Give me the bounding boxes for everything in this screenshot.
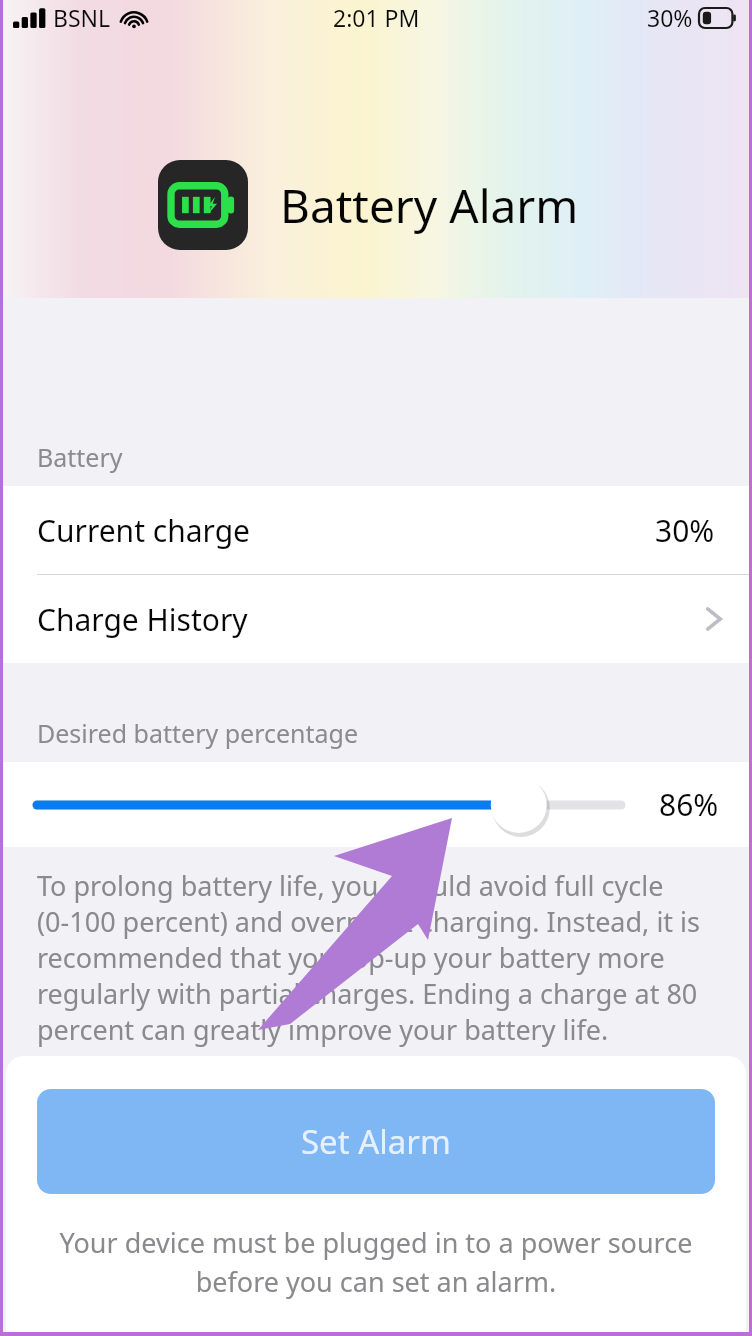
staticText: 30% bbox=[647, 2, 693, 33]
staticText: Set Alarm bbox=[301, 1119, 451, 1164]
button[interactable]: Current charge bbox=[3, 486, 749, 574]
staticText: Charge History bbox=[37, 599, 248, 640]
staticText: Battery Alarm bbox=[280, 174, 579, 237]
staticText: Current charge bbox=[37, 510, 250, 551]
button[interactable]: Desired battery percentage slider bbox=[37, 762, 633, 847]
button[interactable]: Set Alarm bbox=[37, 1089, 715, 1194]
staticText: Battery bbox=[37, 440, 123, 474]
button[interactable]: Charge History bbox=[3, 575, 749, 663]
staticText: Your device must be plugged in to a powe… bbox=[46, 1224, 706, 1300]
staticText: 2:01 PM bbox=[333, 2, 420, 33]
staticText: 86% bbox=[659, 784, 719, 825]
staticText: To prolong battery life, you should avoi… bbox=[37, 867, 715, 1048]
staticText: BSNL bbox=[53, 2, 111, 33]
staticText: Desired battery percentage bbox=[37, 716, 359, 750]
staticText: 30% bbox=[655, 510, 715, 551]
